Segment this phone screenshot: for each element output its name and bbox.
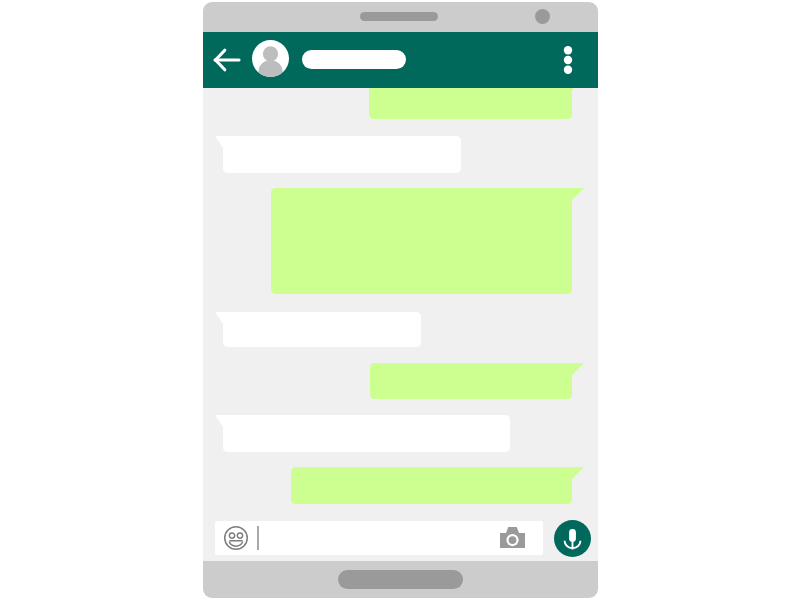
button[interactable]: Home — [338, 570, 463, 589]
button[interactable]: Record voice message — [554, 520, 591, 557]
button[interactable]: Sent message — [370, 363, 584, 399]
button[interactable]: More options — [552, 42, 584, 78]
button[interactable]: Sent message — [369, 78, 584, 119]
button[interactable]: Sent message — [271, 188, 584, 294]
button[interactable]: Sent message — [291, 467, 584, 504]
button[interactable]: Back — [211, 45, 245, 75]
button[interactable]: Contact photo — [252, 40, 289, 77]
button[interactable]: Type a message — [215, 521, 543, 555]
